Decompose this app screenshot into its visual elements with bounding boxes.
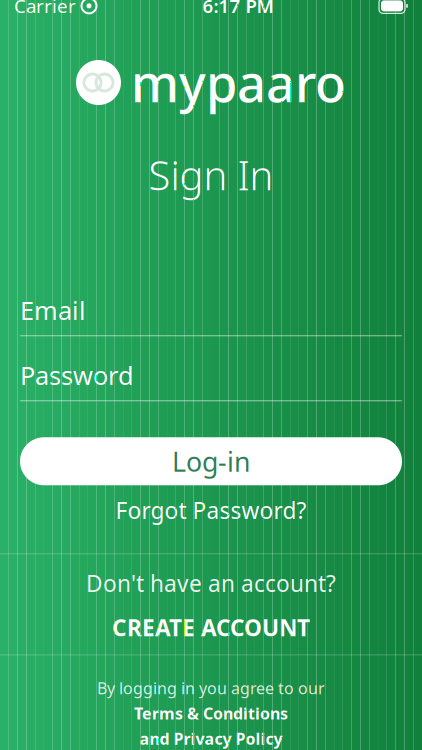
staticText: and Privacy Policy (139, 728, 282, 749)
button[interactable]: CREATE ACCOUNT (0, 614, 422, 640)
staticText: CREATE ACCOUNT (112, 612, 310, 642)
staticText: 6:17 PM (202, 0, 273, 18)
staticText: Forgot Password? (115, 495, 306, 525)
staticText: Password (20, 358, 134, 392)
button[interactable]: Password (20, 362, 402, 401)
staticText: Don't have an account? (86, 568, 336, 598)
staticText: Carrier (14, 0, 76, 18)
button[interactable]: Terms & Conditions (134, 703, 288, 724)
button[interactable]: and Privacy Policy (139, 728, 282, 749)
staticText: Log-in (172, 444, 250, 479)
staticText: Terms & Conditions (134, 703, 288, 724)
staticText: Email (20, 293, 86, 327)
button[interactable]: Log-in (20, 437, 402, 485)
staticText: Sign In (148, 148, 273, 201)
staticText: mypaaro (131, 49, 346, 116)
staticText: By logging in you agree to our (97, 677, 325, 699)
button[interactable]: Forgot Password? (20, 497, 402, 523)
button[interactable]: Email (20, 297, 402, 336)
